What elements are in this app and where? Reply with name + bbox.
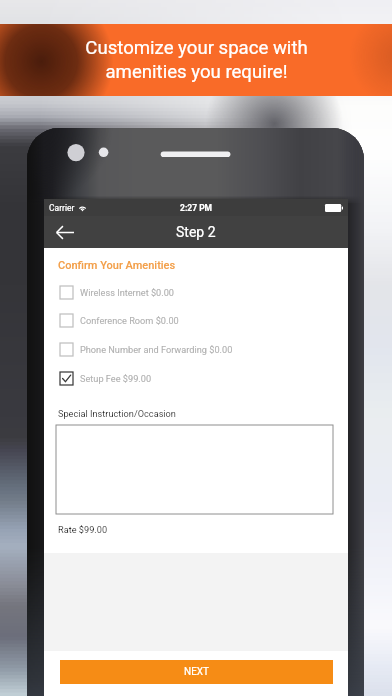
staticText: Step 2: [176, 224, 216, 240]
staticText: Confirm Your Amenities: [58, 259, 176, 272]
staticText: Customize your space with amenities you …: [85, 37, 308, 82]
staticText: Phone Number and Forwarding $0.00: [80, 344, 233, 355]
staticText: Conference Room $0.00: [80, 315, 179, 326]
staticText: Carrier: [49, 203, 75, 213]
button[interactable]: Setup Fee $99.00: [44, 364, 348, 393]
button[interactable]: NEXT: [60, 660, 333, 684]
staticText: Rate $99.00: [58, 524, 108, 535]
staticText: Setup Fee $99.00: [80, 373, 152, 384]
staticText: Wireless Internet $0.00: [80, 287, 175, 298]
button[interactable]: Phone Number and Forwarding $0.00: [44, 335, 348, 364]
button[interactable]: [56, 425, 333, 514]
button[interactable]: Conference Room $0.00: [44, 306, 348, 335]
staticText: NEXT: [184, 666, 210, 678]
staticText: Special Instruction/Occasion: [58, 408, 176, 419]
staticText: 2:27 PM: [180, 203, 213, 213]
button[interactable]: Wireless Internet $0.00: [44, 278, 348, 307]
button[interactable]: Back: [50, 217, 80, 247]
